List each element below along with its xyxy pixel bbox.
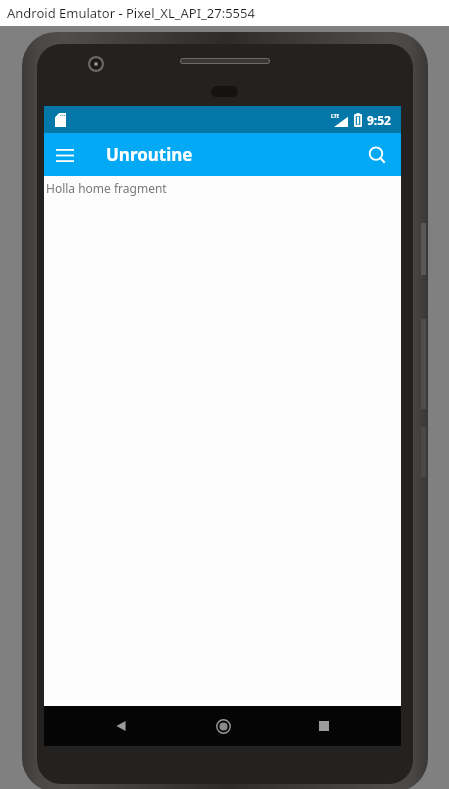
staticText: Unroutine (106, 143, 193, 166)
staticText: Android Emulator - Pixel_XL_API_27:5554 (7, 4, 255, 22)
button[interactable]: Search (359, 137, 395, 173)
staticText: LTE (331, 113, 340, 120)
button[interactable]: Back (97, 706, 145, 746)
button[interactable]: Home (199, 706, 247, 746)
button[interactable]: Recent apps (300, 706, 348, 746)
staticText: 9:52 (367, 112, 391, 128)
staticText: Holla home fragment (46, 180, 167, 196)
button[interactable]: Open navigation drawer (48, 138, 82, 172)
